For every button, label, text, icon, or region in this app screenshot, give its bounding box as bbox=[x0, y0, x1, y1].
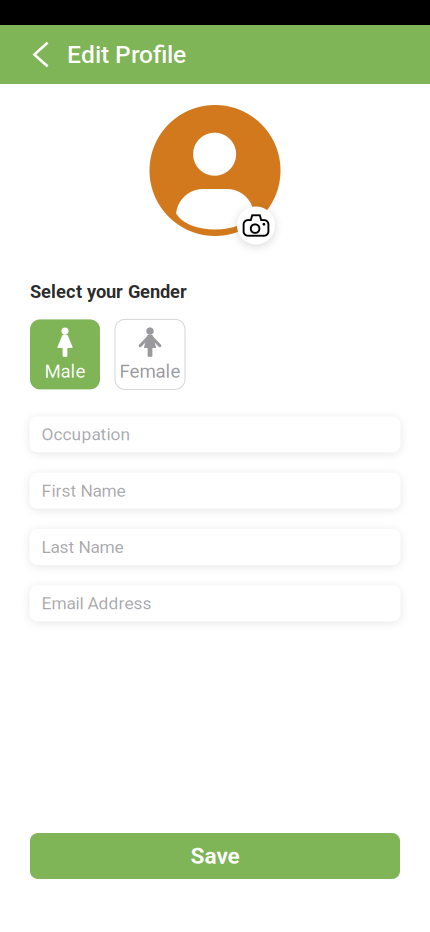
staticText: Male bbox=[44, 360, 85, 382]
button[interactable]: Occupation bbox=[29, 416, 400, 452]
staticText: Last Name bbox=[41, 537, 123, 557]
button[interactable]: Male bbox=[30, 319, 100, 389]
button[interactable]: Edit Profile bbox=[67, 25, 186, 84]
button[interactable]: Email Address bbox=[29, 585, 400, 621]
staticText: Select your Gender bbox=[30, 281, 187, 302]
staticText: Save bbox=[190, 843, 239, 869]
staticText: Edit Profile bbox=[67, 40, 186, 69]
staticText: Email Address bbox=[41, 593, 151, 613]
button[interactable]: Last Name bbox=[29, 529, 400, 565]
staticText: Occupation bbox=[41, 424, 130, 445]
button[interactable]: Female bbox=[115, 319, 185, 389]
staticText: Female bbox=[119, 360, 180, 382]
button[interactable]: Save bbox=[30, 833, 400, 879]
staticText: First Name bbox=[41, 481, 125, 501]
button[interactable]: First Name bbox=[29, 473, 400, 509]
button[interactable]: Back bbox=[0, 25, 67, 84]
button[interactable]: Change profile photo bbox=[237, 206, 275, 244]
